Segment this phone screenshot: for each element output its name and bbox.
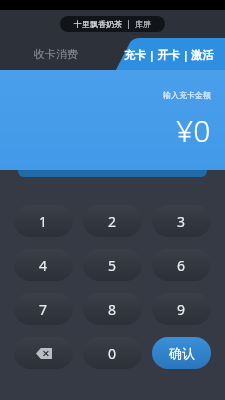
staticText: 充卡 | 开卡 | 激活: [124, 47, 214, 62]
button[interactable]: 1: [14, 205, 73, 237]
button[interactable]: 收卡消费: [0, 38, 112, 70]
button[interactable]: 4: [14, 249, 73, 281]
button[interactable]: 十里飘香奶茶: [60, 16, 165, 32]
staticText: 2: [108, 212, 117, 231]
staticText: 3: [177, 212, 186, 231]
button[interactable]: 充卡 | 开卡 | 激活: [112, 38, 225, 70]
button[interactable]: 2: [83, 205, 142, 237]
staticText: 十里飘香奶茶: [74, 19, 122, 29]
staticText: 5: [108, 256, 117, 275]
staticText: 9: [177, 300, 186, 319]
staticText: 4: [39, 256, 48, 275]
staticText: 0: [108, 344, 117, 363]
button[interactable]: 9: [152, 293, 211, 325]
staticText: 8: [108, 300, 117, 319]
staticText: 库胖: [135, 19, 151, 29]
staticText: 输入充卡金额: [163, 90, 211, 100]
button[interactable]: 6: [152, 249, 211, 281]
button[interactable]: 7: [14, 293, 73, 325]
button[interactable]: 8: [83, 293, 142, 325]
staticText: 收卡消费: [34, 47, 78, 61]
button[interactable]: 确认: [152, 337, 211, 369]
button[interactable]: 0: [83, 337, 142, 369]
button[interactable]: Backspace: [14, 337, 73, 369]
staticText: ¥0: [176, 110, 211, 151]
staticText: 7: [39, 300, 48, 319]
staticText: 6: [177, 256, 186, 275]
staticText: 1: [39, 212, 48, 231]
staticText: 确认: [169, 345, 195, 361]
button[interactable]: 3: [152, 205, 211, 237]
button[interactable]: 5: [83, 249, 142, 281]
